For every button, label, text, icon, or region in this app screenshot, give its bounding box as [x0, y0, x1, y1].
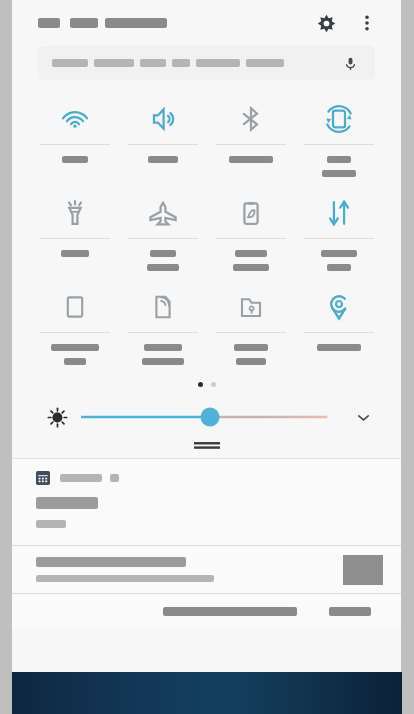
- button[interactable]: Mobile data: [295, 188, 383, 278]
- button[interactable]: Close: [321, 601, 379, 622]
- button[interactable]: More options: [351, 7, 383, 39]
- button[interactable]: Torch: [30, 188, 119, 264]
- button[interactable]: Voice search: [339, 52, 361, 74]
- button[interactable]: [12, 459, 401, 545]
- button[interactable]: Secure folder: [207, 282, 295, 372]
- button[interactable]: Auto rotate: [295, 94, 383, 184]
- button[interactable]: Location: [295, 282, 383, 358]
- button[interactable]: Voice search: [38, 46, 375, 80]
- button[interactable]: Mobile hotspot: [119, 282, 207, 372]
- button[interactable]: Sound: [119, 94, 207, 170]
- button[interactable]: Settings: [309, 6, 343, 40]
- button[interactable]: Wi-Fi: [30, 94, 119, 170]
- button[interactable]: Block notifications: [155, 601, 305, 622]
- button[interactable]: Power saving: [207, 188, 295, 278]
- button[interactable]: Expand brightness settings: [351, 405, 375, 429]
- button[interactable]: [12, 546, 401, 593]
- button[interactable]: Bluetooth: [207, 94, 295, 170]
- button[interactable]: Flight mode: [119, 188, 207, 278]
- button[interactable]: Brightness: [81, 406, 339, 428]
- button[interactable]: Blue light filter: [30, 282, 119, 372]
